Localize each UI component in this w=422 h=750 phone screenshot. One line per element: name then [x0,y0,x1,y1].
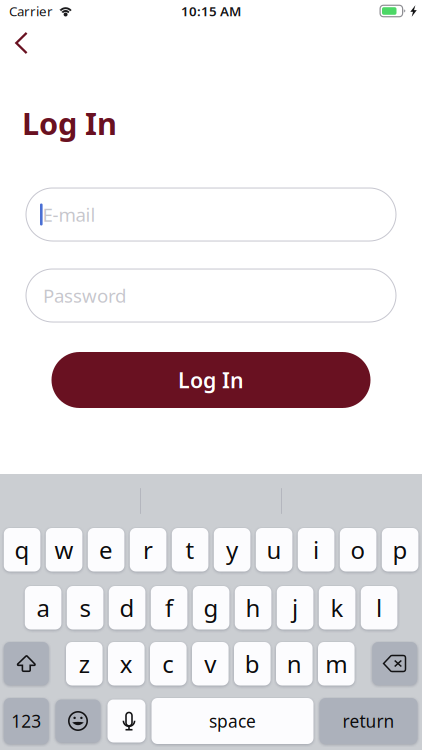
button[interactable]: c [150,642,187,685]
staticText: m [325,648,347,680]
button[interactable]: f [151,586,187,629]
staticText: t [186,534,195,566]
button[interactable]: g [193,586,229,629]
button[interactable]: E-mail [26,188,396,241]
button[interactable]: return [319,698,417,744]
button[interactable]: 123 [4,698,49,744]
button[interactable]: d [109,586,145,629]
staticText: v [204,648,216,680]
staticText: h [246,592,261,624]
staticText: n [287,648,302,680]
staticText: q [15,534,30,566]
button[interactable]: a [25,586,61,629]
staticText: return [342,709,394,732]
button[interactable]: Log In [51,352,370,408]
staticText: e [99,534,113,566]
staticText: Log In [22,103,117,143]
button[interactable]: Back [0,25,46,65]
staticText: w [55,534,74,566]
staticText: Password [43,283,126,308]
staticText: a [37,592,50,624]
button[interactable]: l [361,586,397,629]
button[interactable]: e [88,528,124,571]
staticText: space [209,709,256,732]
staticText: z [79,648,90,680]
button[interactable]: h [235,586,271,629]
staticText: b [245,648,260,680]
staticText: 123 [11,709,41,732]
staticText: r [143,534,153,566]
staticText: k [331,592,344,624]
button[interactable]: Dictate [107,699,145,742]
button[interactable]: w [46,528,82,571]
button[interactable]: y [214,528,250,571]
button[interactable]: q [4,528,40,571]
button[interactable]: Password [26,269,396,322]
staticText: j [292,592,298,624]
staticText: E-mail [43,202,96,227]
button[interactable]: z [66,642,103,685]
staticText: s [80,592,91,624]
button[interactable]: j [277,586,313,629]
staticText: g [204,592,219,624]
button[interactable]: space [151,698,313,744]
staticText: d [120,592,135,624]
button[interactable]: p [382,528,418,571]
staticText: y [226,534,238,566]
staticText: l [376,592,382,624]
staticText: x [120,648,133,680]
button[interactable]: v [192,642,229,685]
button[interactable]: r [130,528,166,571]
button[interactable]: n [276,642,313,685]
staticText: p [393,534,408,566]
staticText: c [162,648,174,680]
button[interactable]: x [108,642,145,685]
staticText: o [351,534,366,566]
staticText: u [267,534,282,566]
staticText: Carrier [9,2,53,20]
button[interactable]: s [67,586,103,629]
button[interactable]: Delete [372,642,417,685]
staticText: Log In [178,366,244,394]
button[interactable]: i [298,528,334,571]
button[interactable]: Emoji [55,699,100,742]
button[interactable]: b [234,642,271,685]
button[interactable]: o [340,528,376,571]
button[interactable]: Shift [4,642,49,685]
button[interactable]: u [256,528,292,571]
button[interactable]: m [318,642,355,685]
staticText: i [313,534,319,566]
staticText: f [165,592,173,624]
button[interactable]: t [172,528,208,571]
button[interactable]: k [319,586,355,629]
staticText: 10:15 AM [181,2,241,20]
